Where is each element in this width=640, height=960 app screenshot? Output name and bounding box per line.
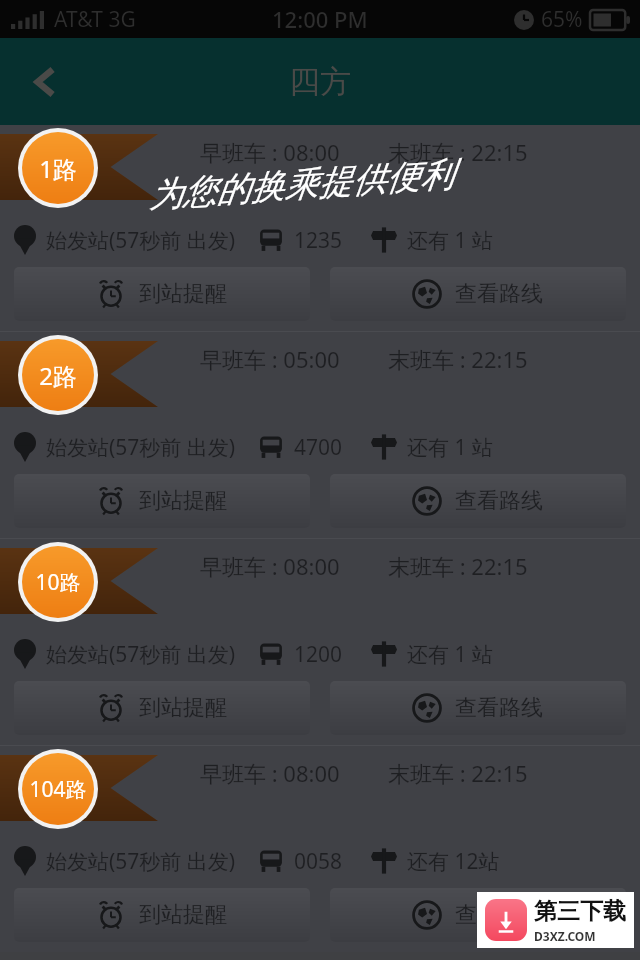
staticText: 到站提醒 (139, 694, 227, 722)
staticText: 四方 (289, 62, 351, 101)
staticText: 始发站(57秒前 出发) (46, 640, 236, 669)
staticText: 4700 (294, 433, 343, 462)
staticText: 早班车 : 08:00 (200, 137, 340, 167)
staticText: 还有 1 站 (407, 433, 493, 462)
staticText: 早班车 : 05:00 (200, 344, 340, 374)
staticText: 始发站(57秒前 出发) (46, 433, 236, 462)
staticText: 末班车 : 22:15 (388, 758, 528, 788)
button[interactable]: 早班车 : 08:00 (0, 746, 640, 952)
staticText: 还有 1 站 (407, 640, 493, 669)
button[interactable]: 查看路线 (330, 267, 626, 321)
staticText: 查看路线 (455, 280, 543, 308)
button[interactable]: 到站提醒 (14, 267, 310, 321)
staticText: 10路 (35, 568, 81, 597)
staticText: 早班车 : 08:00 (200, 758, 340, 788)
button[interactable]: 查看路线 (330, 681, 626, 735)
button[interactable]: Back (14, 50, 78, 114)
staticText: 为您的换乘提供便利 (147, 152, 455, 217)
staticText: 0058 (294, 847, 343, 876)
button[interactable]: 早班车 : 08:00 (0, 539, 640, 745)
button[interactable]: 早班车 : 08:00 (0, 125, 640, 331)
staticText: 2路 (39, 359, 77, 392)
button[interactable]: 到站提醒 (14, 888, 310, 942)
staticText: D3XZ.COM (534, 928, 596, 944)
button[interactable]: 早班车 : 05:00 (0, 332, 640, 538)
staticText: 始发站(57秒前 出发) (46, 847, 236, 876)
staticText: 查看路线 (455, 901, 543, 929)
staticText: 还有 1 站 (407, 226, 493, 255)
button[interactable]: 到站提醒 (14, 474, 310, 528)
staticText: 第三下载 (534, 897, 626, 926)
staticText: 65% (541, 5, 583, 34)
staticText: 104路 (29, 775, 87, 804)
staticText: 到站提醒 (139, 487, 227, 515)
staticText: 末班车 : 22:15 (388, 137, 528, 167)
staticText: 早班车 : 08:00 (200, 551, 340, 581)
staticText: 末班车 : 22:15 (388, 551, 528, 581)
staticText: 始发站(57秒前 出发) (46, 226, 236, 255)
button[interactable]: 查看路线 (330, 888, 626, 942)
staticText: 还有 12站 (407, 847, 500, 876)
staticText: 查看路线 (455, 487, 543, 515)
staticText: 查看路线 (455, 694, 543, 722)
staticText: 到站提醒 (139, 280, 227, 308)
staticText: 1235 (294, 226, 343, 255)
staticText: 12:00 PM (272, 4, 368, 34)
button[interactable]: 到站提醒 (14, 681, 310, 735)
staticText: 末班车 : 22:15 (388, 344, 528, 374)
staticText: 1路 (39, 152, 77, 185)
staticText: AT&T 3G (54, 5, 136, 34)
button[interactable]: 查看路线 (330, 474, 626, 528)
staticText: 1200 (294, 640, 343, 669)
staticText: 到站提醒 (139, 901, 227, 929)
